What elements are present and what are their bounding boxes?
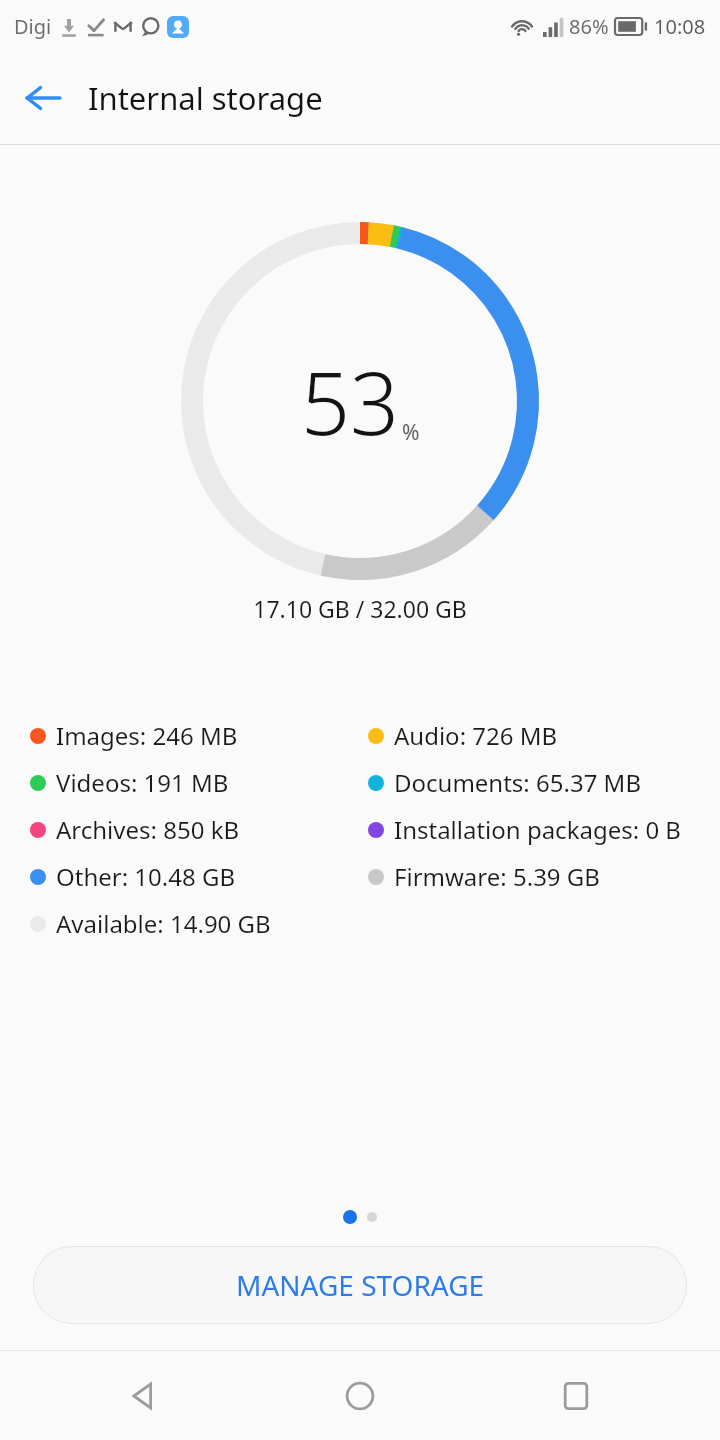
button[interactable]: MANAGE STORAGE	[33, 1246, 687, 1324]
staticText: Archives: 850 kB	[56, 813, 240, 846]
staticText: Videos: 191 MB	[56, 766, 229, 799]
button[interactable]: Videos: 191 MB	[30, 759, 360, 806]
button[interactable]: Back	[12, 67, 74, 129]
button[interactable]: Archives: 850 kB	[30, 806, 360, 853]
button[interactable]: Home	[323, 1359, 397, 1433]
staticText: MANAGE STORAGE	[236, 1266, 485, 1304]
staticText: Images: 246 MB	[56, 719, 238, 752]
button[interactable]: Back	[107, 1359, 181, 1433]
button[interactable]: Available: 14.90 GB	[30, 900, 360, 947]
staticText: 17.10 GB / 32.00 GB	[0, 593, 720, 624]
button[interactable]: Firmware: 5.39 GB	[368, 853, 700, 900]
staticText: Available: 14.90 GB	[56, 907, 271, 940]
staticText: %	[402, 418, 420, 447]
staticText: Internal storage	[88, 77, 323, 119]
staticText: Other: 10.48 GB	[56, 860, 236, 893]
staticText: 86%	[569, 13, 609, 40]
button[interactable]: Installation packages: 0 B	[368, 806, 700, 853]
button[interactable]: Other: 10.48 GB	[30, 853, 360, 900]
button[interactable]: Documents: 65.37 MB	[368, 759, 700, 806]
staticText: 10:08	[654, 13, 706, 40]
staticText: Installation packages: 0 B	[394, 813, 681, 846]
staticText: 53	[301, 343, 400, 460]
button[interactable]: Audio: 726 MB	[368, 712, 700, 759]
button[interactable]: Recents	[539, 1359, 613, 1433]
staticText: Audio: 726 MB	[394, 719, 558, 752]
staticText: Documents: 65.37 MB	[394, 766, 641, 799]
staticText: Digi	[14, 13, 52, 40]
button[interactable]: Images: 246 MB	[30, 712, 360, 759]
staticText: Firmware: 5.39 GB	[394, 860, 600, 893]
